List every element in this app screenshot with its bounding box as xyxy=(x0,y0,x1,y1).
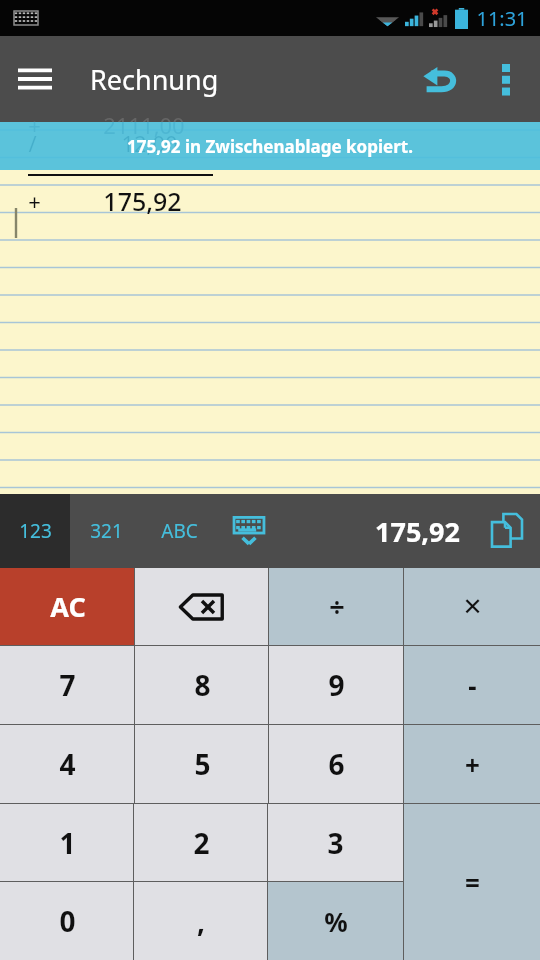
button[interactable]: 2 xyxy=(134,804,268,881)
button[interactable]: Hide keyboard xyxy=(216,494,282,568)
button[interactable]: AC xyxy=(0,568,135,645)
staticText: 5 xyxy=(194,745,211,783)
staticText: 0 xyxy=(59,902,76,940)
button[interactable]: 5 xyxy=(135,725,269,803)
staticText: ÷ xyxy=(329,588,345,625)
staticText: 175,92 in Zwischenablage kopiert. xyxy=(127,135,413,158)
staticText: 6 xyxy=(328,745,345,783)
staticText: + xyxy=(465,747,480,782)
button[interactable]: Menu xyxy=(0,36,70,122)
staticText: AC xyxy=(50,588,86,625)
button[interactable]: 6 xyxy=(269,725,404,803)
button[interactable]: 8 xyxy=(135,646,269,724)
button[interactable]: Backspace xyxy=(135,568,269,645)
staticText: 4 xyxy=(59,745,76,783)
staticText: + xyxy=(28,186,41,216)
button[interactable]: 1 xyxy=(0,804,134,881)
staticText: 2 xyxy=(193,824,210,862)
button[interactable]: Undo xyxy=(404,36,478,122)
staticText: 1 xyxy=(59,824,76,862)
button[interactable]: 7 xyxy=(0,646,135,724)
button[interactable]: + xyxy=(404,725,540,803)
staticText: + xyxy=(28,110,41,140)
staticText: 175,92 xyxy=(375,513,460,550)
button[interactable]: , xyxy=(134,882,268,960)
staticText: / xyxy=(28,128,37,158)
staticText: ABC xyxy=(161,518,198,544)
staticText: % xyxy=(324,904,348,939)
button[interactable]: 0 xyxy=(0,882,134,960)
staticText: ✕ xyxy=(462,593,483,621)
staticText: , xyxy=(197,902,205,940)
staticText: 9 xyxy=(328,666,345,704)
button[interactable]: % xyxy=(268,882,403,960)
button[interactable]: 123 xyxy=(0,494,70,568)
button[interactable]: ✕ xyxy=(404,568,540,645)
staticText: 7 xyxy=(59,666,76,704)
staticText: Rechnung xyxy=(90,61,219,98)
button[interactable]: Copy xyxy=(478,494,536,568)
button[interactable]: = xyxy=(404,804,540,960)
button[interactable]: ABC xyxy=(142,494,216,568)
staticText: 123 xyxy=(19,518,52,544)
button[interactable]: 321 xyxy=(70,494,142,568)
staticText: 3 xyxy=(327,824,344,862)
button[interactable]: 9 xyxy=(269,646,404,724)
staticText: = xyxy=(465,865,480,900)
staticText: - xyxy=(468,668,477,703)
button[interactable]: 3 xyxy=(268,804,403,881)
staticText: 175,92 xyxy=(103,184,182,218)
button[interactable]: 4 xyxy=(0,725,135,803)
staticText: 12,00 xyxy=(121,128,178,158)
staticText: 11:31 xyxy=(476,5,528,32)
staticText: 8 xyxy=(194,666,211,704)
staticText: 2111,00 xyxy=(103,110,185,140)
staticText: 321 xyxy=(90,518,123,544)
button[interactable]: ÷ xyxy=(269,568,404,645)
button[interactable]: More options xyxy=(478,36,534,122)
button[interactable]: - xyxy=(404,646,540,724)
